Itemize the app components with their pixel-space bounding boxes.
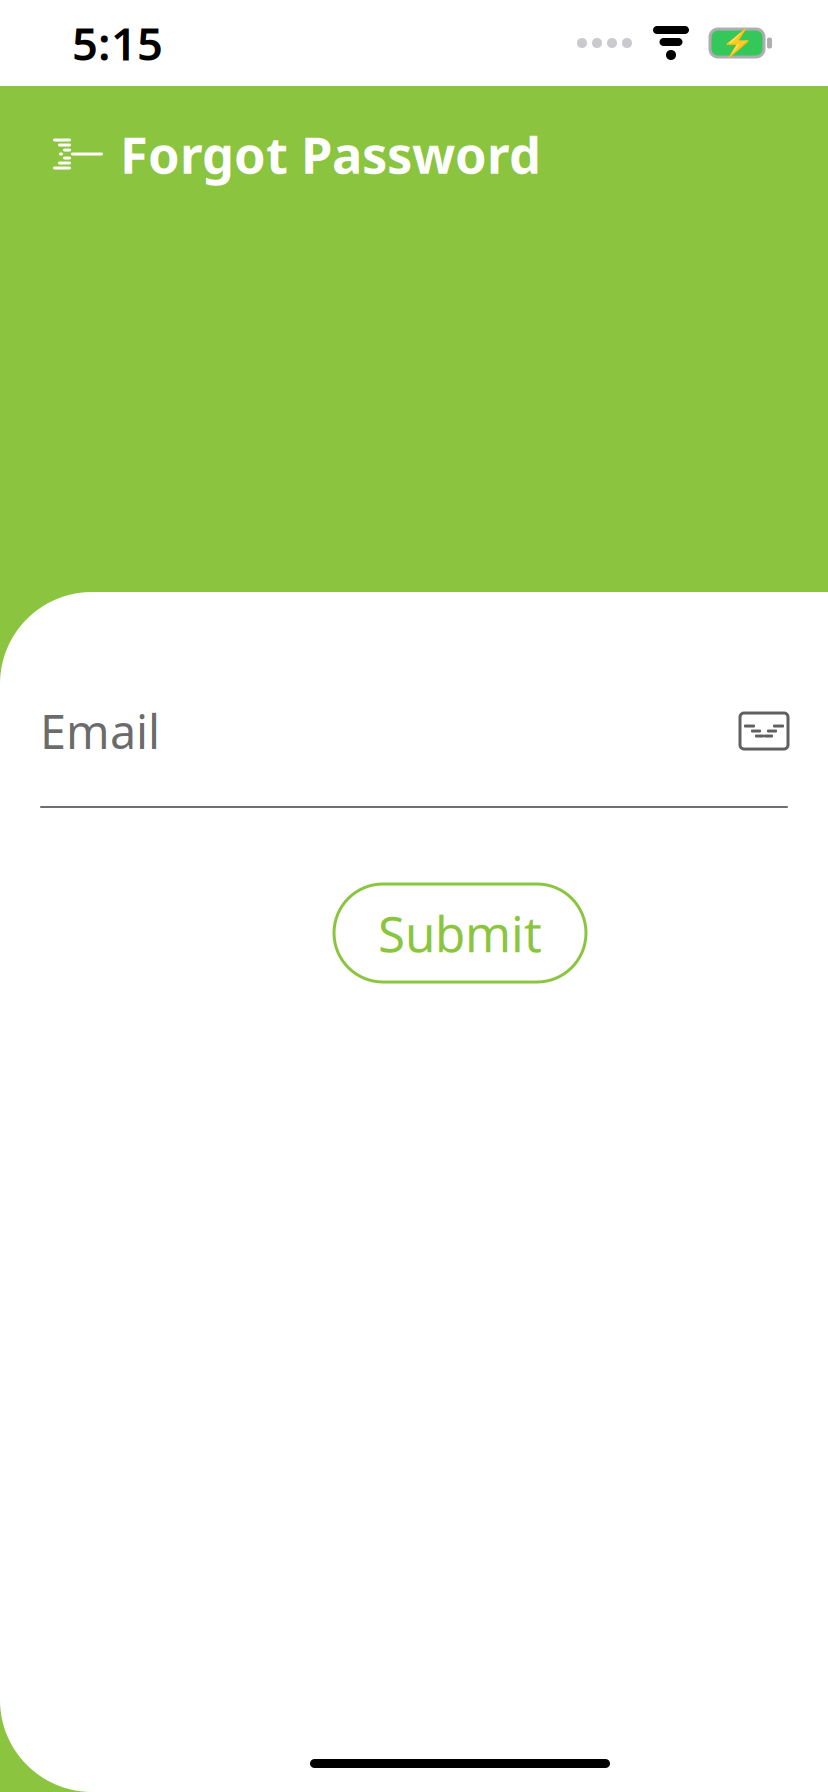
staticText: 5:15	[72, 13, 163, 73]
staticText: Forgot Password	[120, 120, 541, 188]
staticText: Email	[40, 700, 160, 762]
button[interactable]: Submit	[334, 884, 586, 982]
staticText: Submit	[378, 900, 542, 966]
button[interactable]: Back	[34, 118, 120, 190]
staticText: ⚡	[720, 28, 753, 58]
